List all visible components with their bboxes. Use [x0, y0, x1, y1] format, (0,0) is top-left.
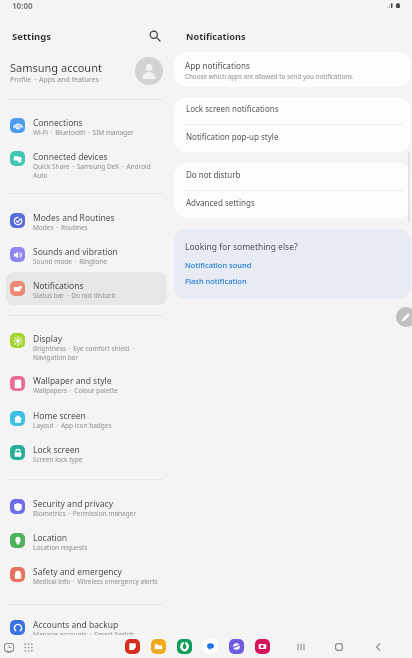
staticText: Connections	[33, 117, 83, 129]
button[interactable]: Security and privacy	[6, 490, 167, 523]
staticText: Samsung account	[10, 60, 102, 75]
staticText: Notifications	[186, 30, 246, 43]
button[interactable]: Back	[369, 638, 387, 656]
button[interactable]: Recent apps	[292, 638, 310, 656]
staticText: Wallpaper and style	[33, 375, 112, 387]
staticText: Quick Share · Samsung DeX · Android Auto	[33, 162, 151, 180]
staticText: App notifications	[185, 60, 250, 71]
button[interactable]: Lock screen notifications	[174, 97, 411, 119]
button[interactable]: Location	[6, 524, 167, 557]
staticText: Wallpapers · Colour palette	[33, 386, 118, 395]
staticText: Status bar · Do not disturb	[33, 291, 116, 300]
button[interactable]: Sounds and vibration	[6, 238, 167, 271]
button[interactable]: Home screen	[6, 402, 167, 435]
staticText: Wi-Fi · Bluetooth · SIM manager	[33, 128, 134, 137]
button[interactable]: Wallpaper and style	[6, 367, 167, 400]
button[interactable]: Samsung account	[0, 52, 172, 90]
staticText: Security and privacy	[33, 498, 114, 510]
button[interactable]: Advanced settings	[174, 191, 411, 213]
staticText: Sound mode · Ringtone	[33, 257, 107, 266]
staticText: Screen lock type	[33, 455, 83, 464]
button[interactable]: msg	[203, 639, 218, 654]
button[interactable]: Accounts and backup	[6, 611, 167, 644]
staticText: Looking for something else?	[185, 241, 298, 253]
button[interactable]: Notification sound	[185, 260, 252, 270]
staticText: Choose which apps are allowed to send yo…	[185, 72, 354, 81]
button[interactable]: phone	[177, 639, 192, 654]
button[interactable]: files	[151, 639, 166, 654]
staticText: Location	[33, 532, 68, 544]
button[interactable]: Recent apps	[0, 638, 18, 656]
button[interactable]: internet	[229, 639, 244, 654]
button[interactable]: All apps	[19, 638, 37, 656]
button[interactable]: Connected devices	[6, 147, 167, 189]
button[interactable]: camera	[255, 639, 270, 654]
staticText: Lock screen	[33, 444, 80, 456]
staticText: Home screen	[33, 410, 86, 422]
staticText: Sounds and vibration	[33, 246, 118, 258]
staticText: Profile · Apps and features	[10, 75, 99, 85]
staticText: Safety and emergency	[33, 566, 122, 578]
button[interactable]: Do not disturb	[174, 163, 411, 185]
button[interactable]: Lock screen	[6, 436, 167, 469]
staticText: Modes · Routines	[33, 223, 88, 232]
button[interactable]: Notification pop-up style	[174, 125, 411, 147]
button[interactable]: Flash notification	[185, 276, 247, 286]
button[interactable]: Modes and Routines	[6, 204, 167, 237]
staticText: Advanced settings	[186, 197, 255, 208]
staticText: Location requests	[33, 543, 88, 552]
staticText: Manage accounts · Smart Switch	[33, 630, 135, 639]
staticText: Notifications	[33, 280, 84, 292]
staticText: 10:00	[12, 0, 33, 11]
staticText: Modes and Routines	[33, 212, 115, 224]
button[interactable]: Home	[330, 638, 348, 656]
button[interactable]: Search	[144, 25, 166, 47]
staticText: Connected devices	[33, 151, 108, 163]
staticText: Layout · App icon badges	[33, 421, 112, 430]
button[interactable]: Safety and emergency	[6, 558, 167, 591]
staticText: Do not disturb	[186, 169, 241, 180]
button[interactable]: Edit	[396, 307, 412, 327]
button[interactable]: Notifications	[6, 272, 167, 305]
button[interactable]: Display	[6, 329, 167, 371]
staticText: Brightness · Eye comfort shield · Naviga…	[33, 344, 136, 362]
staticText: Settings	[12, 30, 51, 43]
button[interactable]: notes	[125, 639, 140, 654]
staticText: Lock screen notifications	[186, 103, 279, 114]
staticText: Accounts and backup	[33, 619, 119, 631]
staticText: Notification pop-up style	[186, 131, 279, 142]
button[interactable]: Connections	[6, 109, 167, 142]
staticText: Medical info · Wireless emergency alerts	[33, 577, 158, 586]
staticText: Biometrics · Permission manager	[33, 509, 137, 518]
staticText: Display	[33, 333, 62, 345]
